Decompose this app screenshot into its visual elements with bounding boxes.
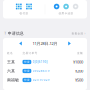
button[interactable]: 收付款 xyxy=(3,0,45,18)
staticText: 02T197029 xyxy=(33,78,50,82)
staticText: 0V0286T19 xyxy=(33,69,50,73)
button[interactable]: 六某 xyxy=(3,66,87,75)
staticText: ¥500 xyxy=(75,77,83,83)
staticText: 收付款 xyxy=(19,12,28,15)
staticText: ¥200 xyxy=(75,68,83,74)
staticText: 0J0J6190J xyxy=(33,60,48,64)
staticText: 快捷 xyxy=(24,60,30,64)
button[interactable]: Next period xyxy=(66,38,73,49)
staticText: 快捷 xyxy=(24,78,30,82)
button[interactable]: 王某 xyxy=(3,57,87,66)
button[interactable]: ¥ xyxy=(0,30,90,36)
staticText: 申请信息 xyxy=(8,31,24,36)
staticText: 王某 xyxy=(7,59,15,64)
staticText: 快捷 xyxy=(24,69,30,73)
staticText: 11月28日-12月 xyxy=(32,41,57,46)
button[interactable]: 信用卡还款 xyxy=(45,0,87,18)
staticText: 六某 xyxy=(7,68,15,73)
staticText: 信用卡还款 xyxy=(59,12,74,15)
staticText: ¥ xyxy=(4,32,6,35)
staticText: 南福敏 xyxy=(7,77,19,82)
staticText: 姓名 xyxy=(7,52,13,55)
staticText: 交易订单号 xyxy=(22,52,37,55)
staticText: 金额 xyxy=(77,52,83,55)
button[interactable]: Previous period xyxy=(17,38,24,49)
button[interactable]: 南福敏 xyxy=(3,75,87,84)
staticText: 查看全部 › xyxy=(71,32,85,35)
staticText: ¥1000 xyxy=(73,59,83,65)
